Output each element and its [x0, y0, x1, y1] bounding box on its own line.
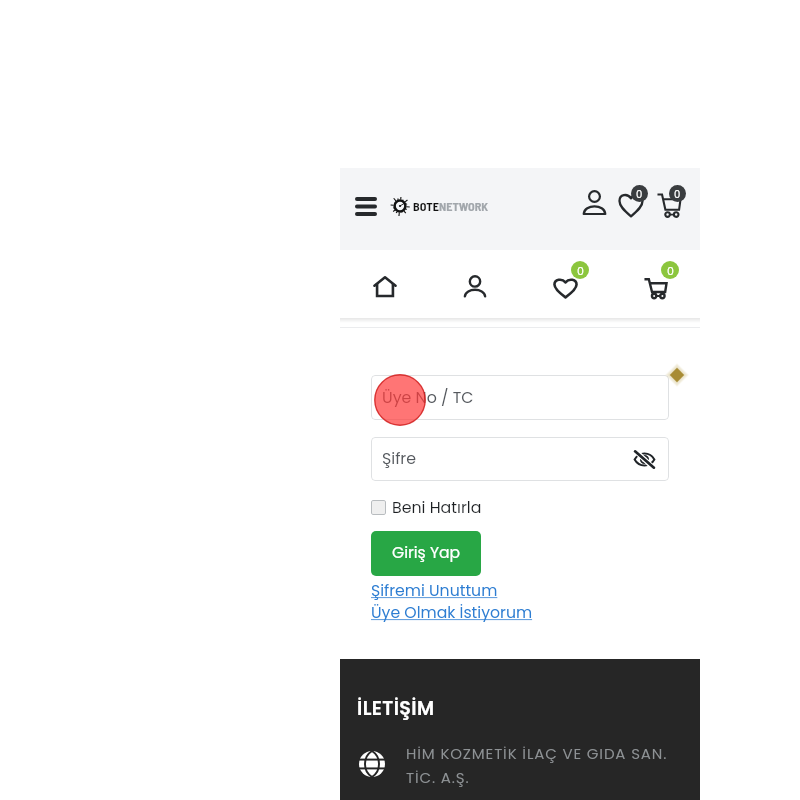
- button[interactable]: Giriş Yap: [371, 531, 481, 576]
- button[interactable]: Beni Hatırla: [371, 494, 482, 520]
- staticText: İLETİŞİM: [357, 695, 435, 722]
- button[interactable]: Show password: [631, 446, 657, 472]
- button[interactable]: Menu: [344, 184, 388, 228]
- staticText: Şifre: [382, 447, 417, 469]
- staticText: 0: [636, 187, 643, 201]
- staticText: 0: [674, 187, 681, 201]
- button[interactable]: Cart: [653, 183, 689, 219]
- staticText: Üye No / TC: [382, 386, 474, 408]
- button[interactable]: Account: [576, 184, 612, 220]
- button[interactable]: Favorites: [615, 183, 651, 219]
- staticText: HİM KOZMETİK İLAÇ VE GIDA SAN. TİC. A.Ş.: [406, 743, 673, 788]
- staticText: 0: [577, 263, 584, 278]
- staticText: BOTE: [413, 199, 439, 214]
- button[interactable]: Şifremi Unuttum: [371, 580, 498, 602]
- staticText: 0: [667, 263, 674, 278]
- button[interactable]: Home: [340, 250, 430, 318]
- button[interactable]: Profile: [430, 250, 520, 318]
- button[interactable]: Favorites: [520, 250, 610, 318]
- staticText: Giriş Yap: [392, 542, 461, 564]
- staticText: NETWORK: [439, 199, 489, 214]
- button[interactable]: BOTE: [390, 184, 489, 228]
- button[interactable]: Üye No / TC: [371, 375, 669, 420]
- staticText: Beni Hatırla: [392, 496, 482, 518]
- button[interactable]: Üye Olmak İstiyorum: [371, 602, 533, 624]
- button[interactable]: Cart: [610, 250, 700, 318]
- button[interactable]: Şifre: [371, 437, 669, 481]
